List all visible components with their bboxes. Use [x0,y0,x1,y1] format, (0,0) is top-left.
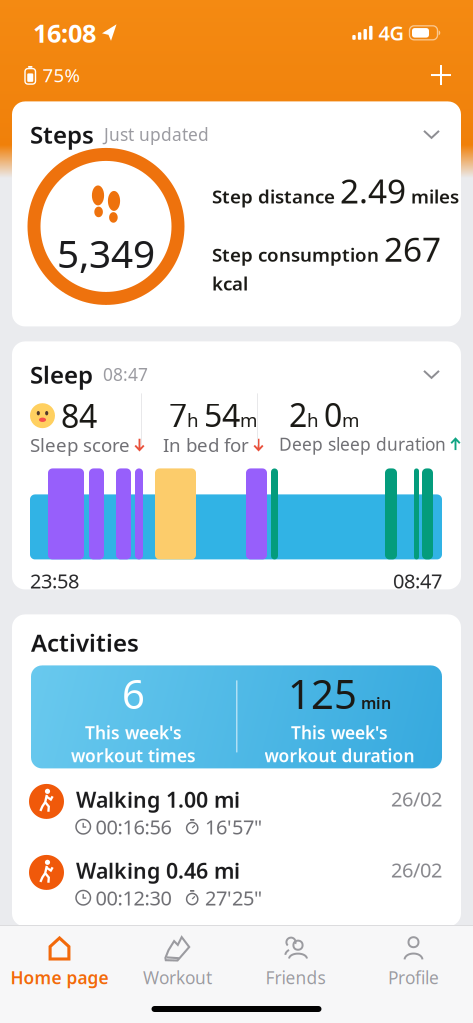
button[interactable]: 75% [25,63,80,87]
button[interactable]: 6 [31,665,442,768]
staticText: 00:12:30 [95,884,171,911]
button[interactable]: Friends [236,936,354,989]
staticText: 84 [61,394,97,437]
staticText: In bed for [163,432,249,457]
staticText: 08:47 [103,363,148,386]
staticText: workout times [71,744,196,767]
staticText: Activities [31,626,139,658]
staticText: Home page [10,966,108,989]
staticText: 6 [122,667,145,720]
button[interactable]: Steps [12,101,461,326]
staticText: Sleep [30,358,93,390]
staticText: 16'57" [205,813,262,840]
staticText: Steps [30,118,94,150]
staticText: Friends [265,966,325,989]
button[interactable]: Walking 0.46 mi [12,614,442,649]
button[interactable]: Home page [0,936,118,989]
staticText: Sleep score [30,432,130,457]
staticText: 125 min [288,667,391,720]
button[interactable]: Profile [354,936,472,989]
staticText: 00:16:56 [95,813,171,840]
staticText: 27'25" [205,884,262,911]
staticText: 7h 54m [169,393,257,436]
staticText: Walking 1.00 mi [76,785,240,814]
staticText: 4G [378,19,404,46]
button[interactable]: Add [431,65,451,85]
staticText: 2h 0m [289,393,359,436]
staticText: This week's [85,721,182,744]
staticText: 26/02 [391,785,442,812]
staticText: 16:08 [33,16,96,50]
staticText: Step consumption 267 kcal [212,227,441,296]
staticText: 23:58 [30,567,79,594]
staticText: Walking 0.46 mi [76,856,240,885]
staticText: Workout [143,966,212,989]
staticText: 5,349 [57,227,155,279]
staticText: 08:47 [393,567,442,594]
staticText: This week's [291,721,388,744]
button[interactable]: Sleep [12,341,461,589]
staticText: Deep sleep duration [279,432,446,455]
staticText: Step distance 2.49 miles [212,168,459,213]
staticText: workout duration [264,744,414,767]
staticText: 75% [42,63,80,87]
staticText: Just updated [104,123,209,146]
button[interactable]: Walking 1.00 mi [12,614,442,649]
staticText: Profile [388,966,439,989]
button[interactable]: Workout [118,936,236,989]
staticText: 26/02 [391,856,442,883]
